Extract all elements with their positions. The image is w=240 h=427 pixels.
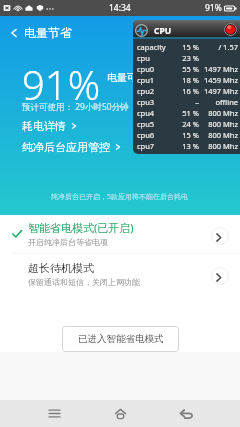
staticText: capacity (137, 42, 174, 52)
staticText: 已进入智能省电模式 (78, 333, 164, 345)
staticText: cpu1 (137, 75, 174, 85)
staticText: cpu2 (137, 86, 174, 96)
staticText: 15 % (174, 42, 199, 52)
staticText: offline (199, 97, 238, 107)
staticText: 14:34 (109, 2, 131, 14)
staticText: 预计可使用： 29小时50分钟 (22, 101, 129, 113)
staticText: 电量可用 (107, 71, 147, 84)
staticText: 1497 Mhz (199, 64, 238, 74)
staticText: 15 % (174, 130, 199, 140)
staticText: 开启纯净后台等省电项 (28, 237, 108, 247)
staticText: cpu (137, 53, 174, 63)
staticText: 800 Mhz (199, 130, 238, 140)
staticText: cpu6 (137, 130, 174, 140)
other: Open (211, 267, 229, 285)
staticText: cpu0 (137, 64, 174, 74)
staticText: 24 % (174, 119, 199, 129)
button[interactable]: Back (166, 400, 206, 427)
staticText: 电量节省 (24, 25, 72, 40)
staticText: 耗电详情 (22, 119, 66, 133)
staticText: – (174, 97, 199, 107)
staticText: 纯净后台已开启，5款应用将不能在后台耗电 (51, 192, 189, 202)
button[interactable]: 智能省电模式(已开启) (0, 215, 240, 252)
staticText: 智能省电模式(已开启) (28, 220, 134, 235)
staticText: 23 % (174, 53, 199, 63)
staticText: cpu7 (137, 141, 174, 151)
staticText: 1497 Mhz (199, 86, 238, 96)
staticText: 55 % (174, 64, 199, 74)
staticText: 800 Mhz (199, 108, 238, 118)
staticText: cpu3 (137, 97, 174, 107)
staticText: cpu4 (137, 108, 174, 118)
button[interactable]: Back (0, 16, 240, 49)
other: Back (9, 28, 19, 38)
staticText: 13 % (174, 141, 199, 151)
button[interactable]: Home (100, 400, 140, 427)
staticText: 91% (205, 2, 222, 14)
staticText: 超长待机模式 (28, 261, 94, 275)
staticText: 91% (22, 57, 101, 111)
button[interactable]: Menu (34, 400, 74, 427)
staticText: 51 % (174, 108, 199, 118)
staticText: cpu5 (137, 119, 174, 129)
button[interactable]: 耗电详情 (22, 119, 78, 133)
staticText: 保留通话和短信，关闭上网功能 (28, 277, 140, 287)
staticText: 800 Mhz (199, 119, 238, 129)
staticText: 18 % (174, 75, 199, 85)
staticText: / 1.57 (199, 42, 238, 52)
staticText: 1459 Mhz (199, 75, 238, 85)
staticText: CPU (154, 25, 172, 37)
other: Open (211, 227, 229, 245)
staticText: 16 % (174, 86, 199, 96)
button[interactable]: 超长待机模式 (0, 255, 240, 292)
button[interactable]: 纯净后台应用管控 (22, 140, 122, 154)
button[interactable]: capacity (133, 20, 240, 154)
staticText: 800 Mhz (199, 141, 238, 151)
staticText: 纯净后台应用管控 (22, 140, 110, 154)
button[interactable]: 已进入智能省电模式 (62, 326, 179, 352)
